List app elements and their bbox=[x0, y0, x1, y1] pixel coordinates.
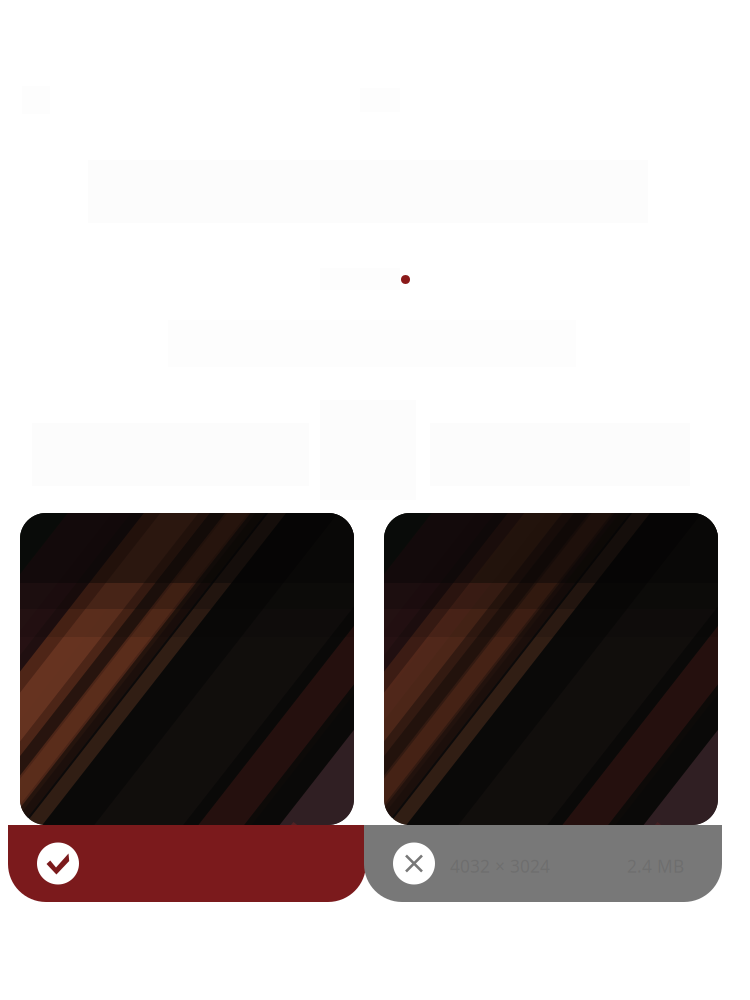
staticText: 2.4 MB bbox=[627, 854, 684, 877]
button[interactable]: Keep photo bbox=[8, 825, 366, 902]
button[interactable]: Delete photo bbox=[364, 825, 722, 902]
